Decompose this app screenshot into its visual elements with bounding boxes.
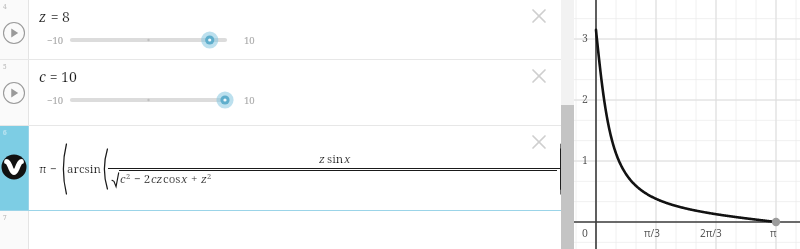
button[interactable]: Play slider for c [0,60,28,126]
button[interactable]: Play slider for z [0,0,28,60]
staticText: 4 [3,2,7,11]
staticText: 5 [3,62,7,71]
staticText: z [39,7,47,26]
staticText: x [181,171,188,187]
staticText: 2 [126,171,131,181]
button[interactable]: −10 [39,29,267,51]
staticText: + [188,171,201,187]
staticText: −10 [47,34,64,47]
staticText: z [201,171,207,187]
staticText: 2π/3 [700,226,722,240]
staticText: x [344,151,351,167]
staticText: cos [163,171,181,187]
staticText: π/3 [644,226,660,240]
staticText: 1 [582,153,588,167]
staticText: sin [327,151,344,167]
staticText: arcsin [67,161,101,177]
staticText: = 10 [46,67,77,86]
staticText: z [319,151,325,167]
staticText: π [39,161,47,177]
staticText: 7 [3,213,7,222]
staticText: 3 [582,31,588,45]
staticText: c [39,67,46,86]
staticText: − [47,161,60,177]
button[interactable]: Delete expression [529,132,549,152]
staticText: = 8 [47,7,70,26]
staticText: 2 [582,92,588,106]
button[interactable]: Delete expression c [529,66,549,86]
staticText: π [770,226,777,240]
staticText: 0 [582,226,588,240]
staticText: 10 [244,94,255,107]
button[interactable]: Toggle curve visibility [0,126,28,211]
button[interactable]: −10 [39,89,267,111]
staticText: 10 [244,34,255,47]
staticText: − 2 [131,171,151,187]
staticText: 2 [207,171,212,181]
staticText: −10 [47,94,64,107]
button[interactable]: 3 [574,0,800,249]
button[interactable]: Delete expression z [529,6,549,26]
staticText: 6 [3,128,7,137]
staticText: c [120,171,126,187]
staticText: cz [151,171,163,187]
button[interactable]: Toggle curve visibility [0,126,561,211]
